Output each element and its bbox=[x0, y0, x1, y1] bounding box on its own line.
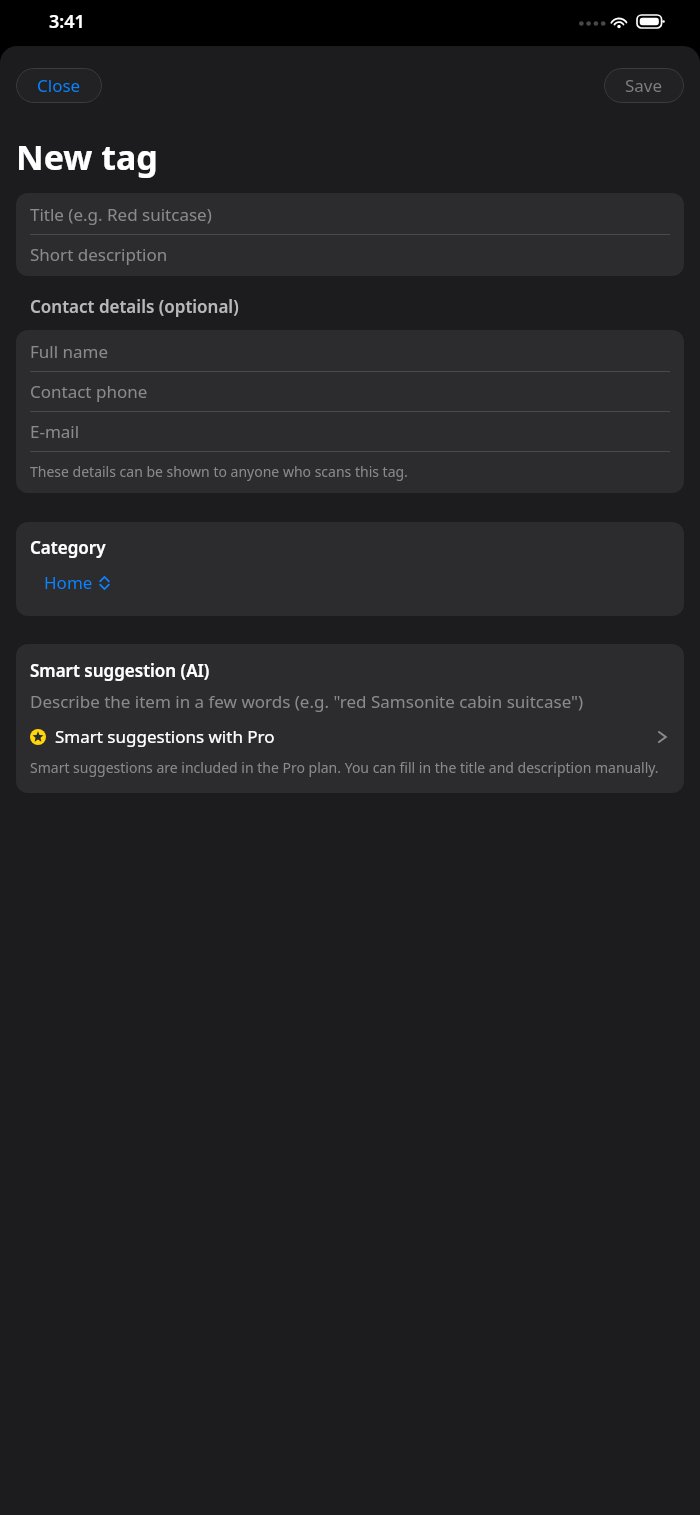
button[interactable]: Save bbox=[604, 68, 684, 103]
staticText: Describe the item in a few words (e.g. "… bbox=[30, 690, 584, 713]
staticText: Contact details (optional) bbox=[30, 295, 239, 318]
staticText: Short description bbox=[30, 243, 168, 266]
staticText: These details can be shown to anyone who… bbox=[30, 462, 408, 481]
button[interactable]: E-mail bbox=[16, 412, 684, 451]
staticText: Close bbox=[37, 74, 81, 97]
button[interactable]: Home bbox=[40, 567, 114, 598]
staticText: Title (e.g. Red suitcase) bbox=[30, 203, 212, 226]
staticText: Smart suggestions with Pro bbox=[55, 725, 657, 748]
staticText: Home bbox=[44, 571, 93, 594]
staticText: Smart suggestion (AI) bbox=[30, 659, 210, 682]
button[interactable]: Contact phone bbox=[16, 372, 684, 411]
button[interactable]: Smart suggestions with Pro bbox=[16, 723, 684, 750]
staticText: Category bbox=[30, 536, 106, 559]
button[interactable]: Short description bbox=[16, 235, 684, 274]
other: Open Pro plan details bbox=[657, 728, 668, 746]
staticText: Save bbox=[625, 74, 663, 97]
staticText: Contact phone bbox=[30, 380, 148, 403]
button[interactable]: Full name bbox=[16, 332, 684, 371]
staticText: E-mail bbox=[30, 420, 80, 443]
staticText: 3:41 bbox=[49, 9, 85, 34]
button[interactable]: Close bbox=[16, 68, 102, 103]
staticText: New tag bbox=[16, 134, 158, 180]
button[interactable]: Title (e.g. Red suitcase) bbox=[16, 195, 684, 234]
staticText: Smart suggestions are included in the Pr… bbox=[30, 758, 659, 777]
staticText: Full name bbox=[30, 340, 109, 363]
